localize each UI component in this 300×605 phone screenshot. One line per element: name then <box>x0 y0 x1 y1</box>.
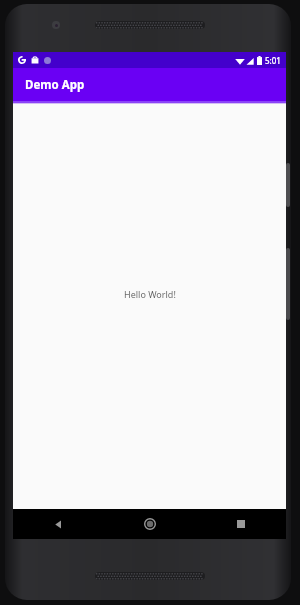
staticText: 5:01 <box>265 55 281 66</box>
button[interactable]: Demo App <box>13 68 286 101</box>
button[interactable]: Back <box>13 509 104 539</box>
button[interactable]: Recent apps <box>195 509 286 539</box>
staticText: Demo App <box>25 77 85 93</box>
button[interactable]: Home <box>104 509 195 539</box>
staticText: Hello World! <box>124 288 176 300</box>
